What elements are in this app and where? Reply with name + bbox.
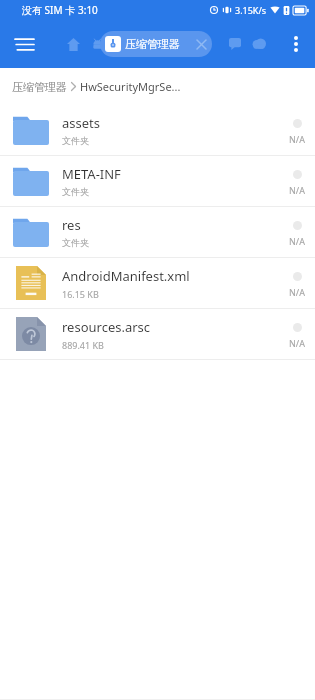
staticText: resources.arsc xyxy=(62,318,151,336)
staticText: 文件夹 xyxy=(62,237,89,248)
button[interactable]: res xyxy=(0,207,315,257)
staticText: N/A xyxy=(289,286,305,298)
button[interactable]: 压缩管理器 xyxy=(100,31,212,57)
staticText: res xyxy=(62,216,81,234)
staticText: 文件夹 xyxy=(62,135,89,146)
button[interactable]: Close tab xyxy=(192,35,210,53)
button[interactable]: Messages xyxy=(223,32,247,56)
button[interactable]: 压缩管理器 xyxy=(12,80,67,94)
button[interactable]: Menu xyxy=(6,26,42,62)
button[interactable]: Apps xyxy=(86,33,108,55)
button[interactable]: Select res xyxy=(293,221,302,230)
button[interactable]: resources.arsc xyxy=(0,309,315,359)
staticText: META-INF xyxy=(62,165,121,183)
button[interactable]: META-INF xyxy=(0,156,315,206)
staticText: 16.15 KB xyxy=(62,288,99,300)
staticText: HwSecurityMgrSe... xyxy=(80,79,181,94)
button[interactable]: assets xyxy=(0,105,315,155)
staticText: 文件夹 xyxy=(62,186,89,197)
staticText: N/A xyxy=(289,184,305,196)
staticText: 889.41 KB xyxy=(62,339,104,351)
button[interactable]: Cloud xyxy=(247,32,271,56)
staticText: 压缩管理器 xyxy=(12,80,67,94)
button[interactable]: Select resources.arsc xyxy=(293,323,302,332)
button[interactable]: Select AndroidManifest.xml xyxy=(293,272,302,281)
button[interactable]: Home xyxy=(60,31,86,57)
staticText: assets xyxy=(62,114,100,132)
button[interactable]: Select META-INF xyxy=(293,170,302,179)
staticText: 没有 SIM 卡 xyxy=(22,3,76,17)
staticText: N/A xyxy=(289,133,305,145)
staticText: AndroidManifest.xml xyxy=(62,267,190,285)
button[interactable]: Select assets xyxy=(293,119,302,128)
staticText: 压缩管理器 xyxy=(125,37,180,51)
staticText: N/A xyxy=(289,235,305,247)
button[interactable]: HwSecurityMgrSe... xyxy=(80,79,181,94)
staticText: 3.15K/s xyxy=(235,4,267,16)
staticText: 3:10 xyxy=(78,3,98,17)
button[interactable]: AndroidManifest.xml xyxy=(0,258,315,308)
staticText: N/A xyxy=(289,337,305,349)
button[interactable]: More options xyxy=(281,29,311,59)
